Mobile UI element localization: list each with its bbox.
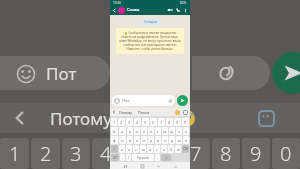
- button[interactable]: ⏎: [161, 154, 171, 161]
- button[interactable]: ?: [126, 154, 131, 161]
- staticText: 9: [250, 140, 262, 167]
- button[interactable]: 3: [62, 138, 90, 169]
- button[interactable]: х: [183, 127, 189, 135]
- staticText: щ: [170, 129, 174, 134]
- button[interactable]: .: [155, 154, 160, 161]
- button[interactable]: ы: [119, 136, 126, 144]
- staticText: ⇧: [113, 147, 117, 151]
- button[interactable]: 9: [242, 138, 270, 169]
- button[interactable]: 3: [126, 118, 133, 126]
- button[interactable]: Русский: [132, 154, 154, 161]
- button[interactable]: о: [155, 136, 161, 144]
- button[interactable]: Recents: [123, 164, 127, 168]
- button[interactable]: 6: [152, 138, 180, 169]
- button[interactable]: 4: [92, 138, 120, 169]
- button[interactable]: 0: [182, 118, 189, 126]
- staticText: у: [129, 129, 131, 134]
- button[interactable]: Previous: [112, 110, 116, 114]
- button[interactable]: Attach: [192, 56, 270, 90]
- button[interactable]: ,: [120, 154, 125, 161]
- button[interactable]: и: [147, 145, 153, 153]
- button[interactable]: Back: [112, 8, 117, 13]
- button[interactable]: 0: [272, 138, 300, 169]
- button[interactable]: Stickers: [183, 110, 188, 115]
- button[interactable]: 1: [0, 138, 29, 169]
- button[interactable]: е: [141, 127, 147, 135]
- staticText: ч: [128, 147, 131, 152]
- staticText: ?: [128, 156, 130, 160]
- button[interactable]: ю: [175, 145, 181, 153]
- button[interactable]: Hide keyboard: [173, 164, 177, 168]
- button[interactable]: 9: [174, 118, 181, 126]
- button[interactable]: ж: [176, 136, 182, 144]
- button[interactable]: ч: [126, 145, 132, 153]
- staticText: ф: [113, 138, 116, 143]
- button[interactable]: в: [127, 136, 133, 144]
- button[interactable]: Пот: [0, 56, 110, 90]
- staticText: Потом: [138, 110, 150, 115]
- button[interactable]: л: [162, 136, 168, 144]
- button[interactable]: Send: [177, 95, 188, 106]
- button[interactable]: Stickers: [257, 109, 276, 128]
- button[interactable]: ф: [111, 136, 118, 144]
- button[interactable]: н: [148, 127, 154, 135]
- button[interactable]: Пот: [112, 95, 175, 106]
- button[interactable]: ц: [119, 127, 126, 135]
- staticText: 6: [160, 140, 172, 167]
- button[interactable]: 1: [111, 118, 117, 126]
- button[interactable]: Back: [156, 164, 160, 168]
- button[interactable]: Contact photo: [118, 7, 125, 14]
- staticText: !#1: [113, 156, 118, 160]
- button[interactable]: г: [155, 127, 161, 135]
- button[interactable]: а: [134, 136, 140, 144]
- staticText: к: [136, 129, 138, 134]
- staticText: я: [121, 147, 124, 152]
- button[interactable]: More options: [183, 8, 188, 13]
- button[interactable]: 8: [212, 138, 240, 169]
- staticText: 4: [136, 120, 139, 125]
- button[interactable]: 🔒 Сообщения и звонки защищены сквозным ш…: [116, 28, 184, 54]
- button[interactable]: э: [183, 136, 189, 144]
- staticText: х: [185, 129, 187, 134]
- button[interactable]: к: [134, 127, 140, 135]
- button[interactable]: Voice call: [175, 7, 181, 13]
- button[interactable]: з: [176, 127, 182, 135]
- button[interactable]: ⌫: [182, 145, 189, 153]
- button[interactable]: й: [111, 127, 118, 135]
- button[interactable]: я: [119, 145, 125, 153]
- staticText: 84%: [180, 1, 187, 5]
- staticText: 1: [9, 140, 21, 167]
- button[interactable]: д: [169, 136, 175, 144]
- button[interactable]: 7: [182, 138, 210, 169]
- button[interactable]: 7: [158, 118, 165, 126]
- button[interactable]: у: [127, 127, 133, 135]
- staticText: л: [164, 138, 167, 143]
- button[interactable]: ⇧: [111, 145, 118, 153]
- button[interactable]: Video call: [167, 7, 173, 13]
- button[interactable]: с: [133, 145, 139, 153]
- button[interactable]: 4: [134, 118, 141, 126]
- button[interactable]: 5: [122, 138, 150, 169]
- staticText: ю: [177, 147, 180, 152]
- button[interactable]: 8: [166, 118, 173, 126]
- button[interactable]: Home: [140, 164, 144, 168]
- button[interactable]: 6: [150, 118, 157, 126]
- button[interactable]: р: [148, 136, 154, 144]
- button[interactable]: ш: [162, 127, 168, 135]
- button[interactable]: 5: [142, 118, 149, 126]
- button[interactable]: 2: [118, 118, 125, 126]
- button[interactable]: 2: [31, 138, 60, 169]
- staticText: 8: [220, 140, 232, 167]
- button[interactable]: Send: [272, 52, 300, 94]
- button[interactable]: м: [140, 145, 146, 153]
- staticText: с: [135, 147, 137, 152]
- button[interactable]: щ: [169, 127, 175, 135]
- staticText: о: [157, 138, 160, 143]
- staticText: 0: [184, 120, 187, 125]
- staticText: 4: [100, 140, 112, 167]
- button[interactable]: ь: [161, 145, 167, 153]
- button[interactable]: т: [154, 145, 160, 153]
- button[interactable]: п: [141, 136, 147, 144]
- button[interactable]: !#1: [111, 154, 119, 161]
- button[interactable]: б: [168, 145, 174, 153]
